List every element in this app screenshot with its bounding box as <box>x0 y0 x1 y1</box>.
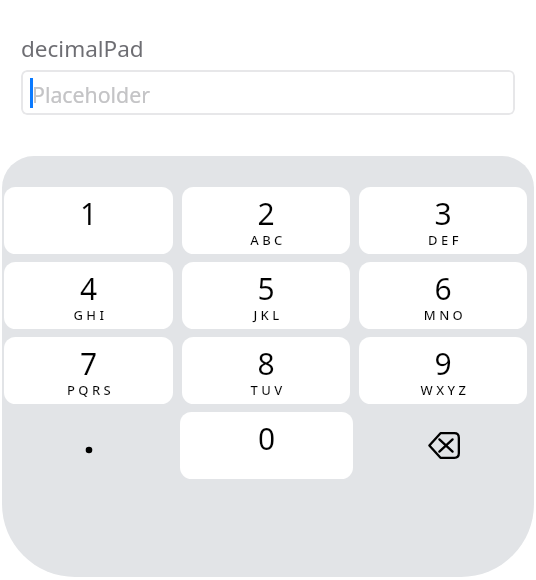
staticText: 4 <box>4 268 173 309</box>
button[interactable]: 3 <box>359 187 527 254</box>
staticText: 1 <box>4 193 173 234</box>
button[interactable]: Backspace <box>359 412 527 479</box>
staticText: WXYZ <box>361 381 527 399</box>
button[interactable]: 8 <box>182 337 350 404</box>
button[interactable]: Decimal separator <box>4 412 173 479</box>
button[interactable]: 2 <box>182 187 350 254</box>
staticText: TUV <box>184 381 350 399</box>
button[interactable]: 6 <box>359 262 527 329</box>
button[interactable]: Decimal text field <box>21 70 515 115</box>
staticText: MNO <box>361 306 527 324</box>
staticText: 2 <box>182 193 350 234</box>
staticText: 8 <box>182 343 350 384</box>
button[interactable]: 1 <box>4 187 173 254</box>
staticText: 6 <box>359 268 527 309</box>
staticText: PQRS <box>6 381 173 399</box>
button[interactable]: 4 <box>4 262 173 329</box>
button[interactable]: 9 <box>359 337 527 404</box>
staticText: 3 <box>359 193 527 234</box>
button[interactable]: 7 <box>4 337 173 404</box>
staticText: 7 <box>4 343 173 384</box>
staticText: JKL <box>184 306 350 324</box>
staticText: ABC <box>184 231 350 249</box>
staticText: 0 <box>180 418 353 459</box>
staticText: decimalPad <box>21 33 144 64</box>
button[interactable]: 0 <box>180 412 353 479</box>
staticText: GHI <box>6 306 173 324</box>
staticText: DEF <box>361 231 527 249</box>
button[interactable]: 5 <box>182 262 350 329</box>
staticText: 5 <box>182 268 350 309</box>
staticText: Placeholder <box>32 80 151 109</box>
staticText: 9 <box>359 343 527 384</box>
